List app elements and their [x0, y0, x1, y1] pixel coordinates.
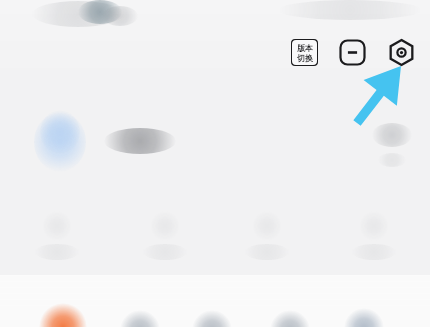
staticText: 版本	[297, 43, 313, 53]
button[interactable]: 版本	[291, 39, 318, 66]
staticText: 切换	[297, 53, 313, 63]
button[interactable]: Settings	[387, 38, 416, 67]
button[interactable]: Minimize	[339, 39, 366, 66]
